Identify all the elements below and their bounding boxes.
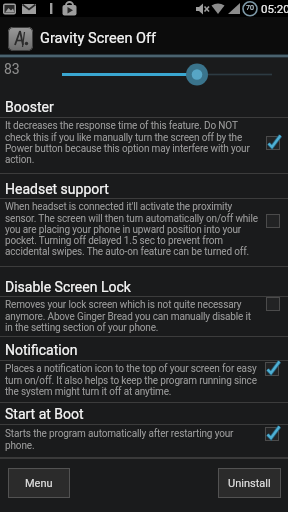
button[interactable] bbox=[0, 17, 288, 54]
staticText: 70 bbox=[246, 4, 254, 12]
staticText: Removes your lock screen which is not qu… bbox=[5, 299, 251, 333]
button[interactable]: Uninstall bbox=[218, 468, 281, 498]
staticText: When headset is connected it'll activate… bbox=[5, 201, 258, 257]
staticText: Start at Boot bbox=[5, 406, 84, 422]
button[interactable] bbox=[0, 58, 288, 94]
button[interactable] bbox=[0, 337, 288, 402]
staticText: Starts the program automatically after r… bbox=[5, 428, 234, 451]
button[interactable] bbox=[0, 267, 288, 336]
staticText: Uninstall bbox=[228, 477, 271, 490]
staticText: 05:20 bbox=[261, 2, 288, 15]
staticText: Headset support bbox=[5, 181, 109, 197]
staticText: 83 bbox=[4, 61, 20, 77]
staticText: Booster bbox=[5, 99, 54, 115]
staticText: Gravity Screen Off bbox=[40, 30, 157, 47]
staticText: It decreases the response time of this f… bbox=[5, 120, 250, 165]
staticText: Notification bbox=[5, 342, 78, 358]
staticText: Menu bbox=[25, 477, 53, 490]
staticText: Disable Screen Lock bbox=[5, 279, 131, 295]
button[interactable]: Menu bbox=[8, 468, 70, 498]
button[interactable] bbox=[0, 95, 288, 173]
button[interactable] bbox=[0, 403, 288, 451]
staticText: Places a notification icon to the top of… bbox=[5, 363, 257, 397]
button[interactable] bbox=[0, 174, 288, 266]
